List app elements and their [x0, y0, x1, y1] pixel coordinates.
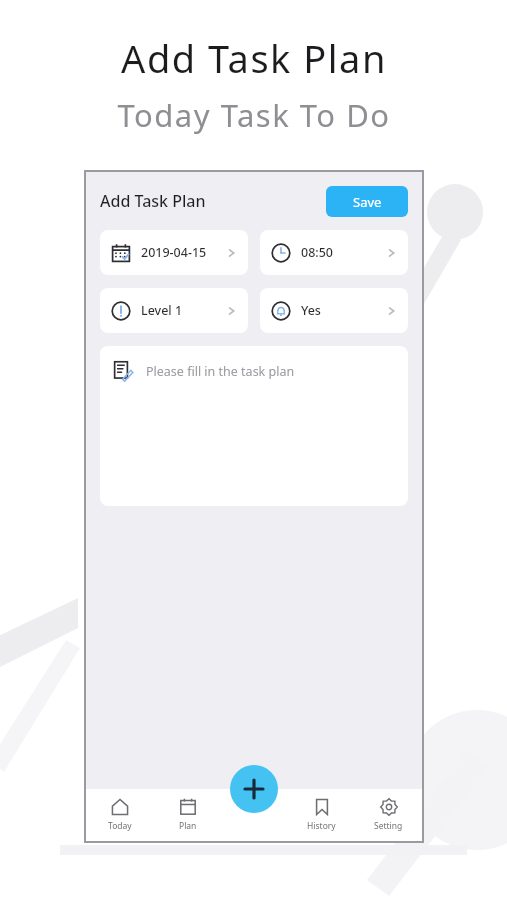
button[interactable]: Today — [86, 789, 154, 841]
button[interactable]: Please fill in the task plan — [100, 346, 408, 506]
staticText: History — [307, 820, 336, 832]
staticText: Add Task Plan — [100, 190, 206, 212]
button[interactable]: Yes — [260, 288, 408, 333]
button[interactable]: Level 1 — [100, 288, 248, 333]
button[interactable]: Save — [326, 186, 408, 217]
staticText: 2019-04-15 — [141, 244, 207, 261]
staticText: Yes — [301, 302, 321, 319]
button[interactable]: 08:50 — [260, 230, 408, 275]
button[interactable]: 2019-04-15 — [100, 230, 248, 275]
button[interactable]: History — [288, 789, 355, 841]
staticText: Today — [108, 820, 132, 832]
staticText: Add Task Plan — [121, 32, 387, 84]
staticText: Today Task To Do — [117, 94, 391, 136]
button[interactable]: Plan — [154, 789, 221, 841]
button[interactable]: Setting — [355, 789, 422, 841]
staticText: Save — [353, 193, 382, 211]
staticText: 08:50 — [301, 244, 334, 261]
staticText: Setting — [374, 820, 403, 832]
staticText: Please fill in the task plan — [146, 363, 295, 380]
staticText: Plan — [179, 820, 197, 832]
staticText: Level 1 — [141, 302, 183, 319]
button[interactable]: Add task — [230, 765, 278, 813]
